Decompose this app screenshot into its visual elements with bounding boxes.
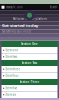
- staticText: Section Three: [19, 80, 39, 84]
- staticText: Item five: [5, 86, 17, 90]
- staticText: example.com: [6, 5, 22, 9]
- button[interactable]: Item five: [1, 85, 57, 91]
- staticText: Section One: [21, 42, 38, 46]
- button[interactable]: Item four: [1, 72, 57, 79]
- staticText: Section Two: [21, 61, 37, 65]
- staticText: Item four: [5, 74, 18, 77]
- staticText: Get started today: [2, 23, 38, 28]
- staticText: Item three: [5, 67, 20, 71]
- staticText: Item one: [5, 48, 18, 52]
- staticText: Search: [49, 5, 57, 9]
- staticText: Welcome to our platform: [12, 17, 46, 21]
- staticText: Item six: [5, 93, 15, 96]
- staticText: Everything you need: [2, 30, 31, 33]
- button[interactable]: Item three: [1, 66, 57, 72]
- button[interactable]: Item two: [1, 53, 57, 60]
- button[interactable]: Item one: [1, 47, 57, 53]
- button[interactable]: Item six: [1, 91, 57, 98]
- staticText: Item two: [5, 55, 17, 58]
